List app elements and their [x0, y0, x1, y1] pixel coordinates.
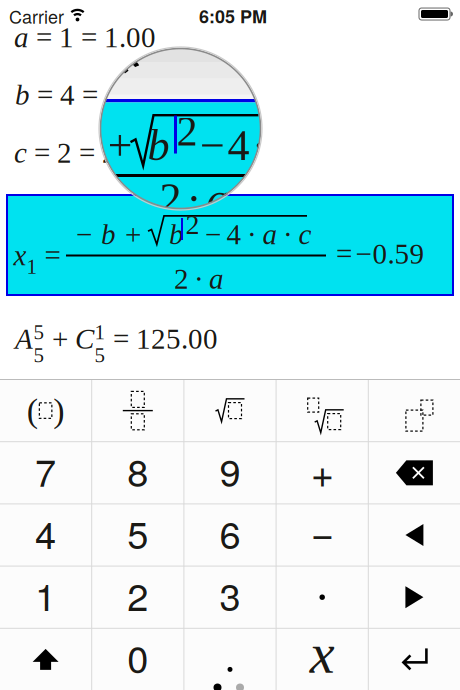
button[interactable] [277, 567, 368, 628]
staticText: 1 [94, 320, 105, 344]
staticText: c [298, 218, 311, 251]
staticText: · [252, 121, 267, 170]
staticText: + [125, 218, 141, 251]
staticText: − [311, 501, 334, 559]
button[interactable]: 3 [184, 567, 276, 628]
button[interactable]: x [277, 629, 368, 690]
button[interactable] [277, 380, 368, 441]
staticText: 7 [35, 443, 56, 497]
staticText: b [147, 121, 169, 170]
staticText: 8 [127, 443, 148, 497]
staticText: ( [27, 392, 38, 429]
staticText: 1 [35, 567, 56, 622]
staticText: − [205, 218, 221, 251]
staticText: 2 [159, 174, 181, 223]
staticText: 3 [219, 567, 240, 622]
staticText: C [75, 323, 94, 355]
button[interactable]: 7 [0, 442, 91, 503]
button[interactable]: 2 [92, 567, 183, 628]
staticText: 2 [185, 209, 199, 240]
staticText: · [283, 218, 293, 251]
staticText: 9 [219, 443, 240, 497]
staticText: a [206, 174, 228, 223]
staticText: Carrier [9, 3, 64, 29]
button[interactable]: 0 [92, 629, 183, 690]
staticText: = 125.00 [106, 323, 218, 355]
staticText: = [37, 239, 67, 272]
staticText: a [262, 218, 277, 251]
staticText: · [194, 263, 204, 295]
button[interactable]: 1 [0, 567, 91, 628]
button[interactable] [0, 629, 91, 690]
staticText: 2 [127, 567, 148, 622]
button[interactable] [369, 567, 460, 628]
button[interactable] [369, 380, 460, 441]
button[interactable]: + [277, 442, 368, 503]
staticText: 5 [127, 505, 148, 560]
staticText: · [247, 218, 257, 251]
button[interactable] [369, 629, 460, 690]
button[interactable] [184, 629, 276, 690]
staticText: 5 [94, 343, 105, 367]
staticText: = [336, 238, 352, 270]
staticText: 0 [127, 630, 148, 684]
button[interactable]: 4 [0, 504, 91, 566]
staticText: 6 [219, 505, 240, 560]
staticText: b [169, 218, 184, 251]
button[interactable] [184, 380, 276, 441]
staticText: − [200, 121, 225, 170]
staticText: 4 [226, 218, 241, 251]
staticText: = 4 = 4 [30, 79, 120, 111]
staticText: + [311, 442, 334, 499]
button[interactable] [369, 442, 460, 503]
button[interactable] [92, 380, 183, 441]
staticText: + [107, 121, 132, 170]
staticText: 2 [174, 263, 189, 295]
staticText: a [14, 21, 29, 54]
staticText: − [76, 218, 92, 251]
staticText: 1 [26, 255, 37, 278]
button[interactable] [369, 504, 460, 566]
staticText: x [13, 239, 26, 272]
staticText: c [14, 137, 27, 169]
button[interactable]: − [277, 504, 368, 566]
button[interactable]: 8 [92, 442, 183, 503]
staticText: 4 [35, 505, 56, 560]
button[interactable]: 5 [92, 504, 183, 566]
staticText: 5 [33, 320, 44, 344]
staticText: + [45, 323, 75, 355]
button[interactable]: 6 [184, 504, 276, 566]
staticText: 6:05 PM [199, 3, 267, 29]
staticText: b [101, 218, 116, 251]
staticText: = 2 = 2 [27, 137, 117, 169]
staticText: − [355, 238, 371, 270]
staticText: = 1 = 1.00 [29, 21, 156, 54]
staticText: ) [53, 392, 64, 429]
staticText: b [15, 79, 30, 111]
staticText: x [310, 623, 335, 685]
staticText: A [15, 323, 33, 355]
staticText: · [186, 174, 201, 223]
staticText: 2 [176, 108, 197, 155]
button[interactable]: ( [0, 380, 91, 441]
staticText: 4 [227, 121, 249, 170]
staticText: a [209, 263, 224, 295]
button[interactable]: 9 [184, 442, 276, 503]
staticText: 5 [33, 343, 44, 367]
staticText: 0.59 [372, 238, 424, 270]
